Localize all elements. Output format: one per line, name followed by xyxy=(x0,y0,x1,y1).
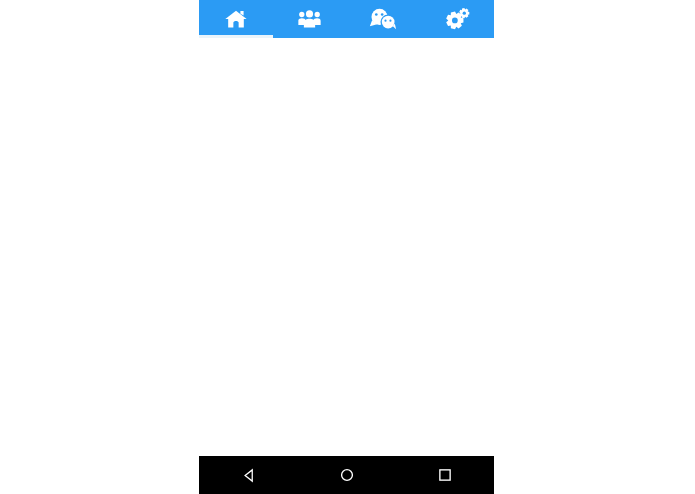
button[interactable]: Back xyxy=(199,456,298,494)
button[interactable]: Home xyxy=(298,456,396,494)
button[interactable]: Home xyxy=(199,0,272,38)
button[interactable]: Recent apps xyxy=(396,456,494,494)
button[interactable]: Settings xyxy=(420,0,494,38)
button[interactable]: Chats xyxy=(346,0,420,38)
button[interactable]: Contacts xyxy=(272,0,346,38)
